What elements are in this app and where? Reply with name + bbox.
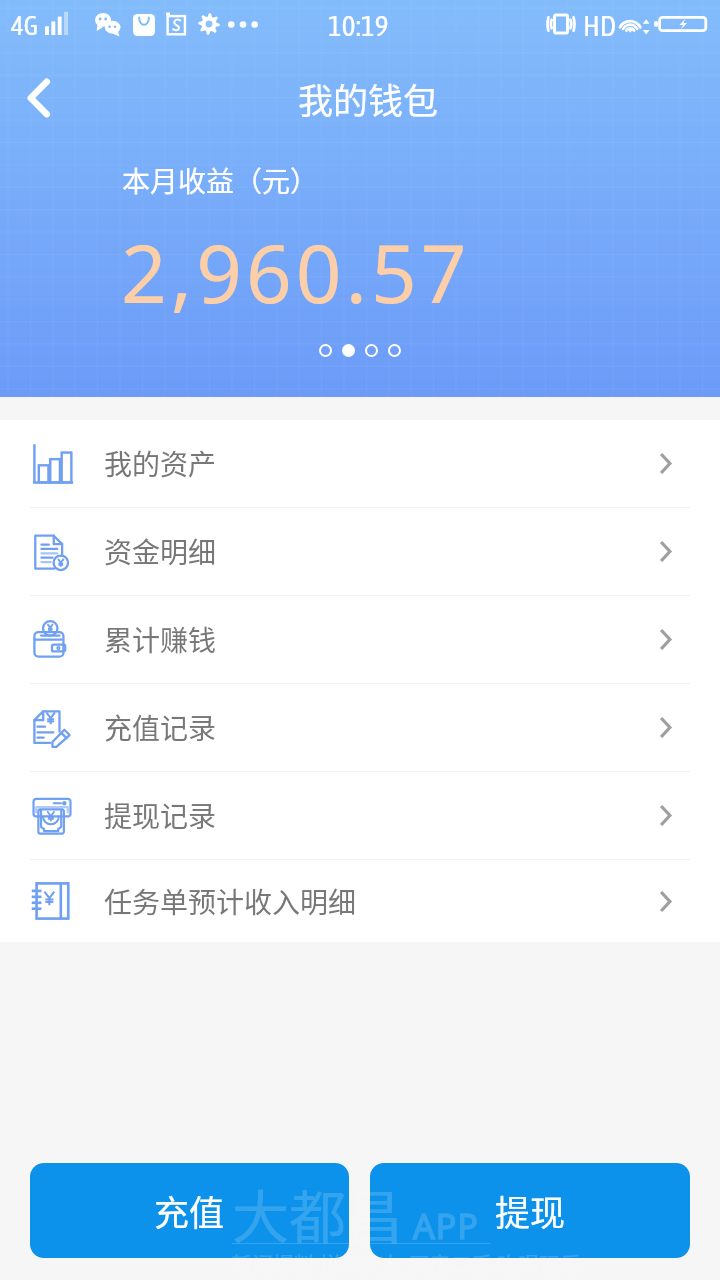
button[interactable]: 提现 — [370, 1163, 690, 1258]
staticText: 2,960.57 — [121, 217, 471, 326]
button[interactable]: 充值记录 — [0, 684, 720, 772]
staticText: 大都昌 — [232, 1172, 403, 1255]
button[interactable]: 我的资产 — [0, 420, 720, 508]
button[interactable]: 任务单预计收入明细 — [0, 860, 720, 942]
button[interactable]: 资金明细 — [0, 508, 720, 596]
staticText: HD — [583, 9, 617, 42]
staticText: 10:19 — [328, 9, 389, 42]
button[interactable]: Back — [13, 72, 65, 124]
staticText: 充值 — [154, 1185, 225, 1236]
button[interactable]: 累计赚钱 — [0, 596, 720, 684]
button[interactable]: 提现记录 — [0, 772, 720, 860]
staticText: 我的钱包 — [298, 73, 439, 124]
staticText: APP — [413, 1203, 479, 1249]
staticText: 充值记录 — [104, 707, 217, 748]
staticText: 提现 — [495, 1185, 566, 1236]
button[interactable]: 充值 — [30, 1163, 349, 1258]
staticText: 提现记录 — [104, 795, 217, 836]
staticText: 本月收益（元） — [122, 160, 319, 201]
staticText: 我的资产 — [104, 443, 217, 484]
staticText: 新闻爆料 拼车交友 买房二手 吃喝玩乐 — [231, 1248, 582, 1278]
staticText: 任务单预计收入明细 — [104, 881, 357, 922]
staticText: 4G — [11, 10, 38, 41]
staticText: 累计赚钱 — [104, 619, 217, 660]
staticText: 资金明细 — [104, 531, 217, 572]
